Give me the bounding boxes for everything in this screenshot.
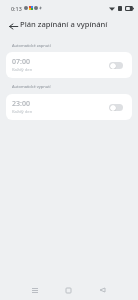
- button[interactable]: Toggle: [109, 62, 123, 69]
- staticText: 07:00: [12, 57, 30, 67]
- staticText: Každý den: [12, 67, 33, 73]
- staticText: 0:13: [11, 5, 22, 12]
- button[interactable]: Back: [0, 15, 18, 33]
- staticText: Automatické zapnutí: [12, 43, 51, 48]
- button[interactable]: Recents: [27, 282, 43, 298]
- button[interactable]: Toggle: [109, 104, 123, 111]
- button[interactable]: Home: [60, 282, 76, 298]
- button[interactable]: 07:00: [6, 52, 132, 78]
- button[interactable]: Back: [94, 282, 110, 298]
- button[interactable]: 23:00: [6, 94, 132, 120]
- staticText: 23:00: [12, 99, 30, 109]
- staticText: Každý den: [12, 109, 33, 115]
- staticText: Automatické vypnutí: [12, 84, 51, 89]
- staticText: Plán zapínání a vypínání: [20, 19, 108, 29]
